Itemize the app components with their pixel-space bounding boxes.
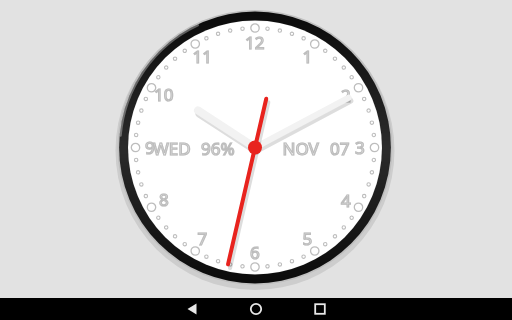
- button[interactable]: Analog clock face: [0, 0, 512, 320]
- button[interactable]: Home: [171, 298, 341, 320]
